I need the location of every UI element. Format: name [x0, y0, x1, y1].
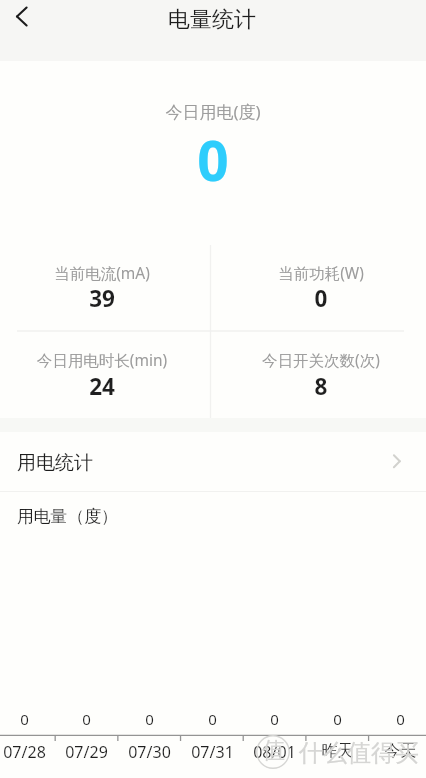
staticText: 0	[55, 709, 118, 729]
button[interactable]: Back	[0, 0, 40, 34]
staticText: 07/31	[181, 741, 244, 763]
staticText: 0	[181, 709, 244, 729]
staticText: 当前电流(mA)	[0, 262, 212, 283]
button[interactable]: 用电统计	[0, 432, 426, 491]
staticText: 值	[262, 736, 285, 765]
staticText: 今日用电时长(min)	[0, 349, 212, 370]
staticText: 0	[211, 283, 426, 314]
staticText: 用电量（度）	[17, 506, 118, 527]
staticText: 0	[0, 122, 426, 197]
staticText: 39	[0, 283, 212, 314]
staticText: 0	[0, 709, 56, 729]
staticText: 0	[369, 709, 426, 729]
staticText: 07/28	[0, 741, 56, 763]
staticText: 24	[0, 371, 212, 402]
staticText: 今天	[369, 741, 426, 761]
staticText: 昨天	[306, 741, 369, 761]
staticText: 07/30	[118, 741, 181, 763]
staticText: 今日用电(度)	[0, 100, 426, 123]
staticText: 8	[211, 371, 426, 402]
staticText: 电量统计	[168, 6, 256, 34]
staticText: 什么值得买	[299, 738, 419, 768]
staticText: 当前功耗(W)	[211, 262, 426, 283]
staticText: 0	[306, 709, 369, 729]
staticText: 07/29	[55, 741, 118, 763]
staticText: 08/01	[243, 741, 306, 763]
staticText: 0	[118, 709, 181, 729]
staticText: 0	[243, 709, 306, 729]
staticText: 用电统计	[17, 451, 93, 475]
staticText: 今日开关次数(次)	[211, 349, 426, 370]
